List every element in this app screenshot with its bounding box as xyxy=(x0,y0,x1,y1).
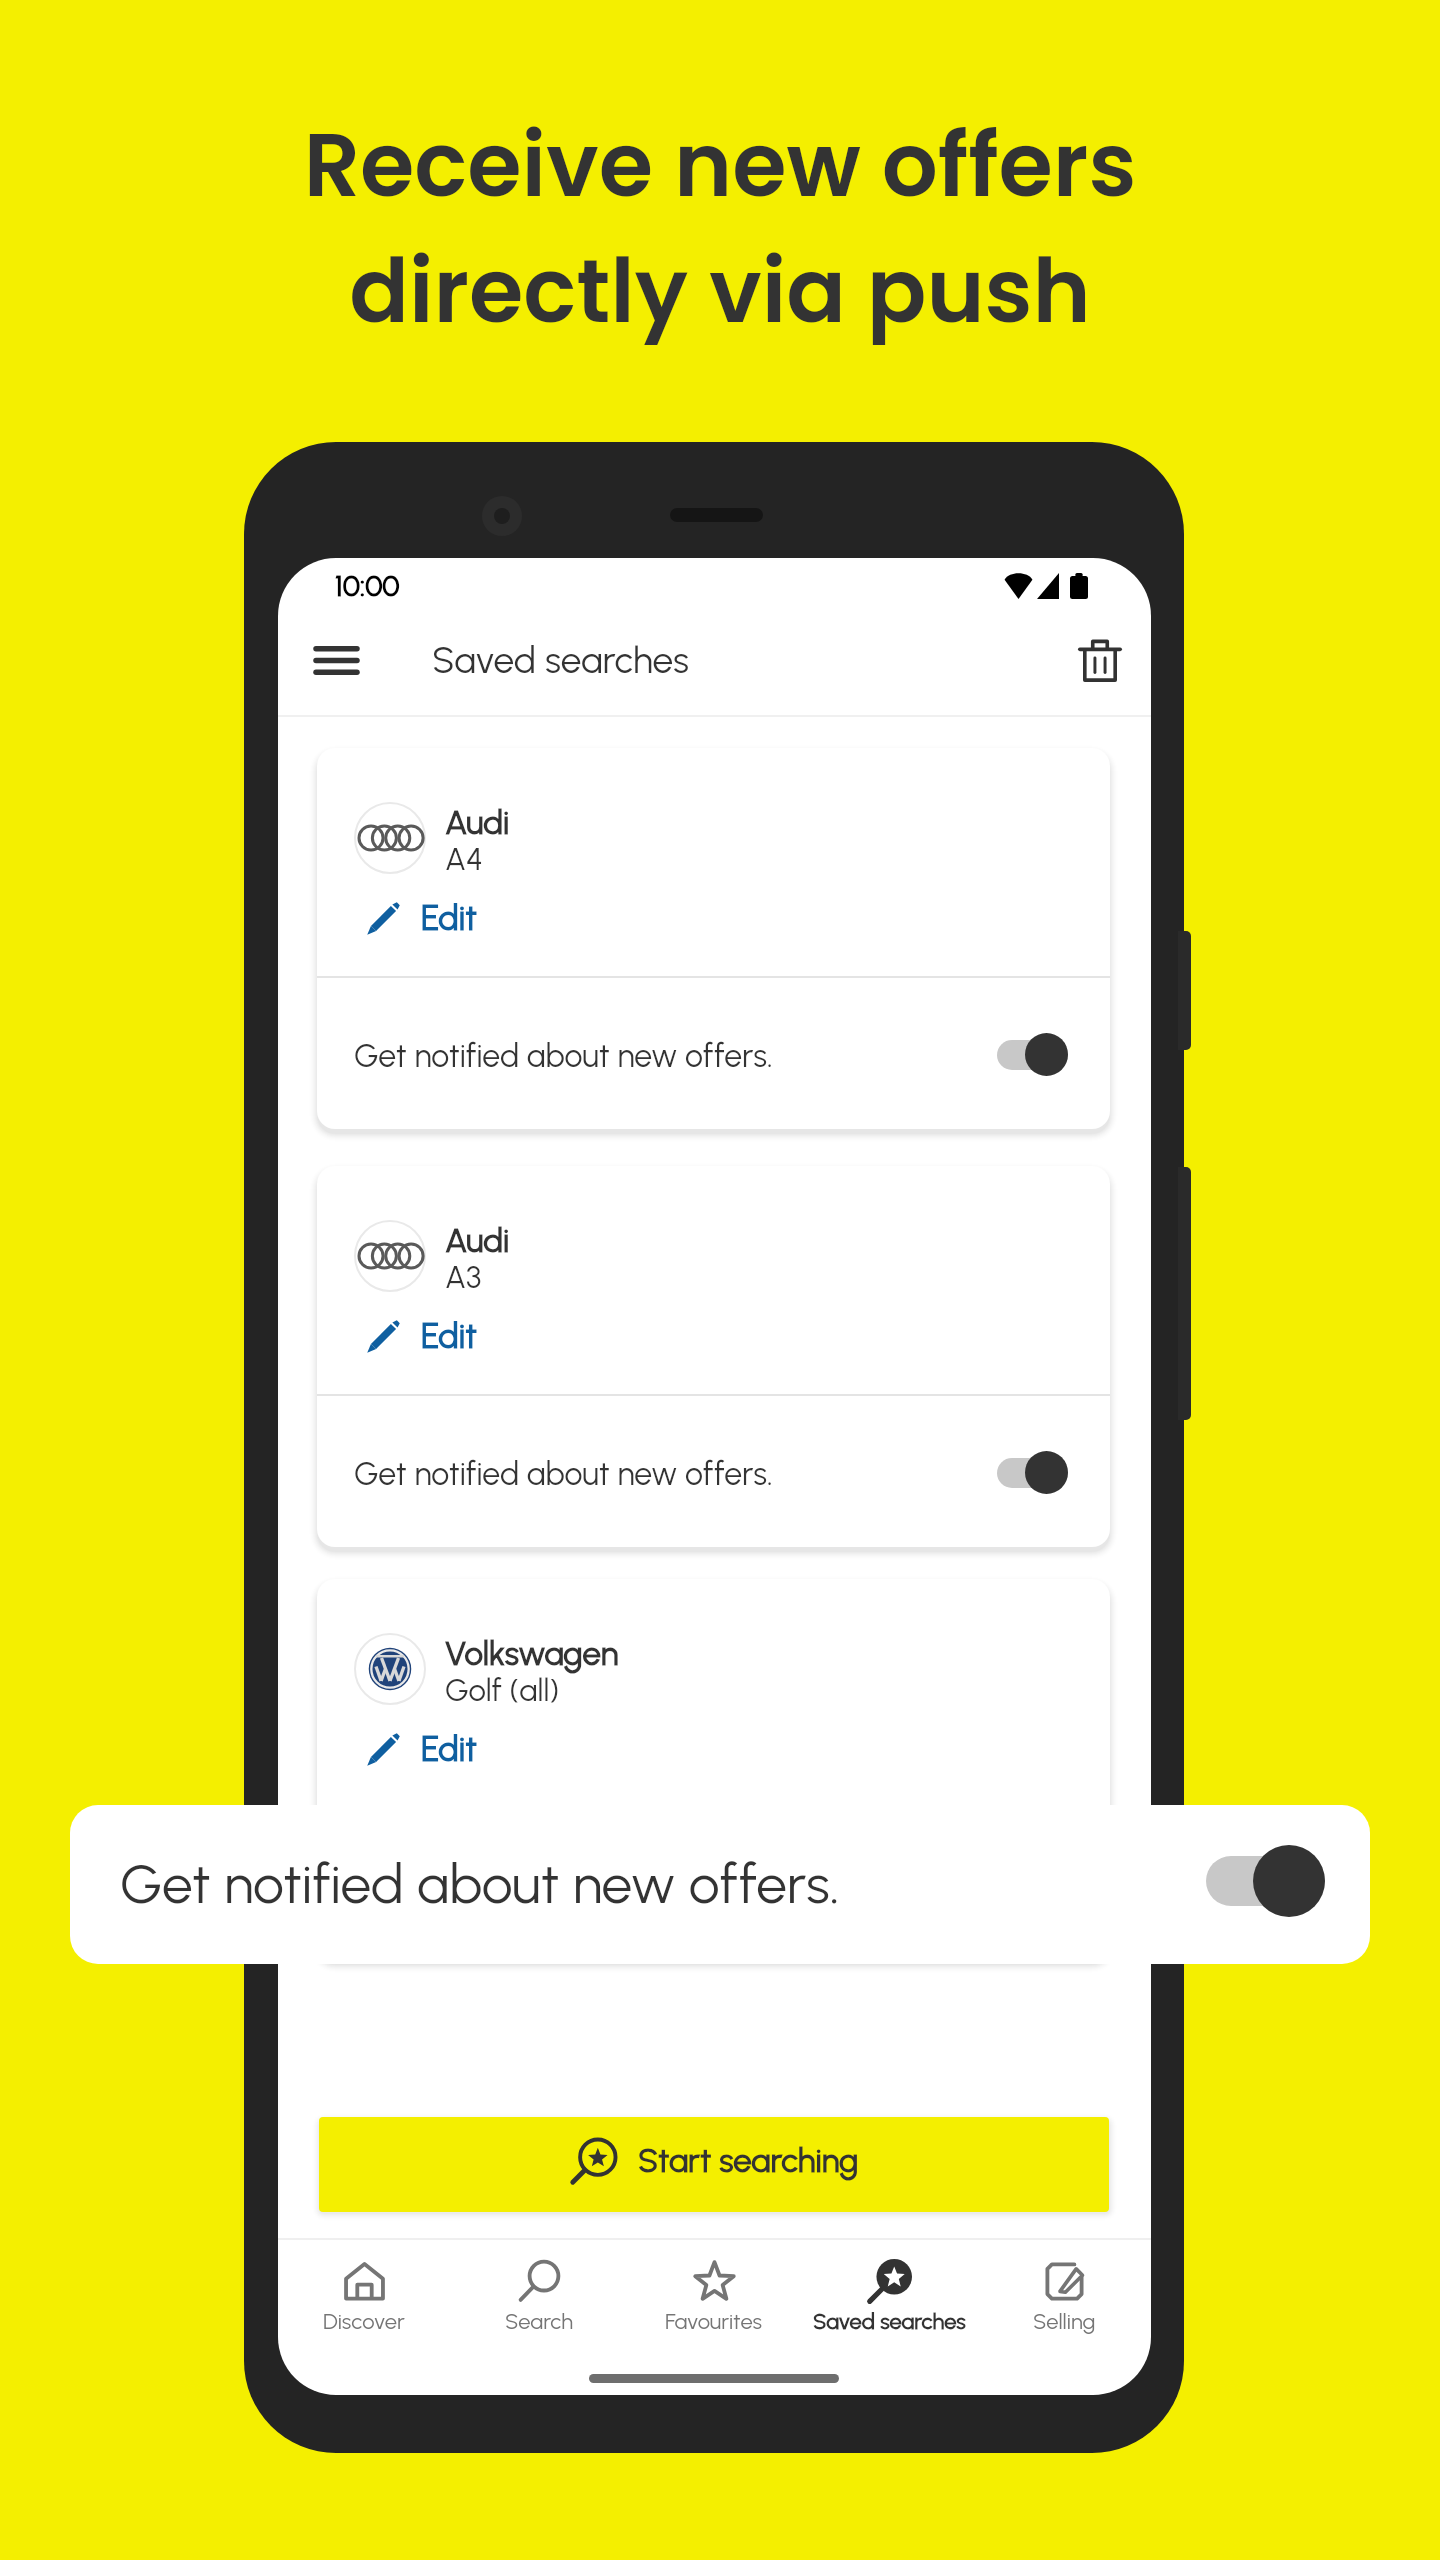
staticText: Edit xyxy=(421,1729,478,1770)
staticText: Get notified about new offers. xyxy=(354,1037,773,1075)
staticText: Edit xyxy=(421,1316,478,1357)
staticText: A4 xyxy=(445,841,483,878)
staticText: Edit xyxy=(421,898,478,939)
button[interactable] xyxy=(317,1579,1110,1807)
button[interactable]: Edit xyxy=(365,894,478,942)
button[interactable]: Get notified about new offers. xyxy=(317,1396,1110,1547)
button[interactable]: Saved searches xyxy=(802,2248,976,2352)
staticText: Start searching xyxy=(638,2141,859,2181)
staticText: Receive new offers directly via push xyxy=(0,104,1440,353)
button[interactable]: Selling xyxy=(977,2248,1151,2352)
staticText: Favourites xyxy=(665,2308,763,2334)
staticText: Saved searches xyxy=(432,638,689,682)
button[interactable]: Delete saved searches xyxy=(1068,629,1132,693)
button[interactable]: Edit xyxy=(365,1312,478,1360)
staticText: Volkswagen xyxy=(445,1634,619,1674)
button[interactable]: Get notified about new offers. xyxy=(317,978,1110,1129)
button[interactable]: Search xyxy=(452,2248,626,2352)
button[interactable] xyxy=(317,748,1110,976)
button[interactable]: Start searching xyxy=(319,2117,1109,2212)
staticText: Golf (all) xyxy=(445,1672,560,1709)
button[interactable]: Discover xyxy=(278,2248,451,2352)
staticText: Selling xyxy=(1033,2308,1096,2334)
staticText: A3 xyxy=(445,1259,482,1296)
button[interactable]: Get notified about new offers. xyxy=(70,1805,1370,1964)
button[interactable]: Get notified about new offers. xyxy=(317,1809,1110,1960)
staticText: Saved searches xyxy=(813,2308,966,2334)
staticText: Get notified about new offers. xyxy=(354,1868,773,1906)
staticText: Audi xyxy=(445,803,510,843)
button[interactable]: Favourites xyxy=(627,2248,801,2352)
staticText: Audi xyxy=(445,1221,510,1261)
staticText: 10:00 xyxy=(335,568,400,603)
button[interactable] xyxy=(317,1166,1110,1394)
button[interactable]: Open navigation menu xyxy=(302,628,370,692)
staticText: Get notified about new offers. xyxy=(120,1851,840,1917)
staticText: Get notified about new offers. xyxy=(354,1455,773,1493)
button[interactable]: Edit xyxy=(365,1725,478,1773)
staticText: Search xyxy=(505,2308,574,2334)
staticText: Discover xyxy=(323,2308,405,2334)
